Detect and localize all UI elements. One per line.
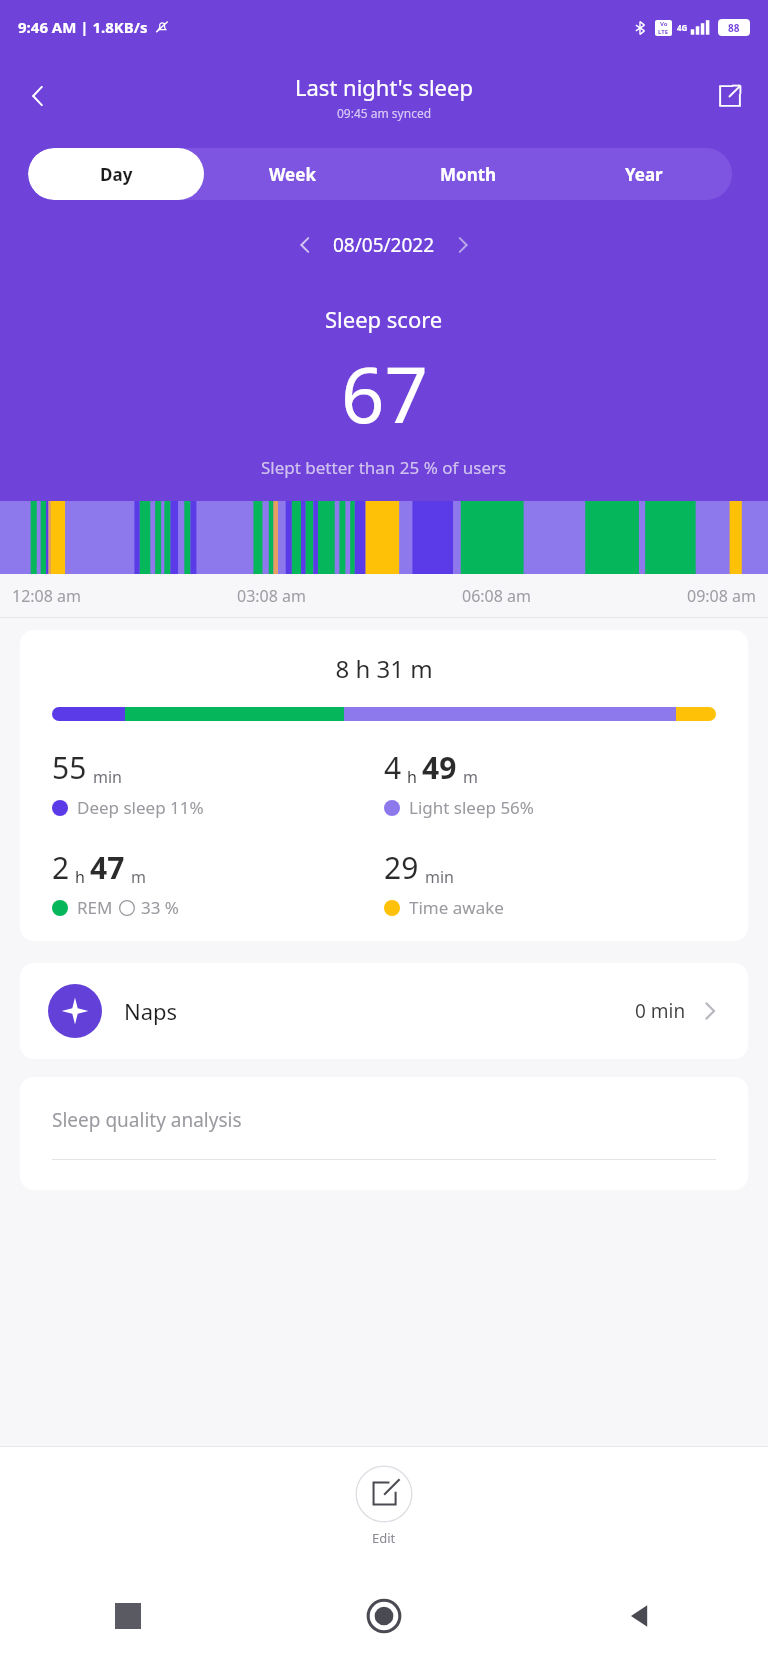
button[interactable]: Back	[512, 1568, 768, 1664]
staticText: min	[425, 866, 454, 888]
staticText: Naps	[124, 996, 178, 1026]
staticText: 67	[341, 342, 428, 446]
staticText: 9:46 AM | 1.8KB/s	[18, 17, 148, 37]
button[interactable]: Week	[204, 148, 380, 200]
staticText: Vo	[660, 20, 668, 28]
staticText: Slept better than 25 % of users	[261, 456, 507, 479]
staticText: 88	[728, 21, 740, 35]
staticText: 4G	[677, 22, 688, 33]
staticText: Sleep score	[325, 304, 443, 334]
staticText: Deep sleep 11%	[77, 796, 204, 819]
staticText: 08/05/2022	[333, 232, 435, 258]
staticText: min	[93, 766, 122, 788]
staticText: Day	[100, 163, 133, 186]
button[interactable]: Day	[28, 148, 204, 200]
staticText: 47	[90, 847, 125, 888]
staticText: LTE	[658, 28, 669, 36]
staticText: 09:45 am synced	[337, 105, 432, 121]
staticText: m	[131, 866, 146, 888]
staticText: 09:08 am	[687, 585, 756, 607]
staticText: 06:08 am	[462, 585, 531, 607]
staticText: 03:08 am	[237, 585, 306, 607]
staticText: Week	[269, 163, 316, 186]
staticText: 29	[384, 847, 419, 888]
button[interactable]: Month	[380, 148, 556, 200]
staticText: 49	[422, 747, 457, 788]
button[interactable]: Home	[256, 1568, 512, 1664]
staticText: Year	[625, 163, 663, 186]
button[interactable]: Edit	[335, 1463, 433, 1549]
staticText: h	[75, 866, 85, 888]
staticText: Light sleep 56%	[409, 796, 534, 819]
button[interactable]: Naps	[20, 963, 748, 1059]
staticText: Month	[440, 163, 497, 186]
staticText: Time awake	[409, 896, 504, 919]
staticText: 33 %	[141, 896, 179, 919]
staticText: Edit	[372, 1529, 396, 1547]
staticText: 12:08 am	[12, 585, 81, 607]
button[interactable]: Next day	[441, 223, 485, 267]
button[interactable]: Year	[556, 148, 732, 200]
staticText: REM	[77, 896, 113, 919]
staticText: 2	[52, 847, 70, 888]
staticText: Sleep quality analysis	[52, 1107, 242, 1133]
button[interactable]: Share	[704, 70, 756, 122]
staticText: 55	[52, 747, 87, 788]
staticText: h	[407, 766, 417, 788]
staticText: Last night's sleep	[295, 72, 473, 102]
button[interactable]: Sleep quality analysis	[20, 1077, 748, 1190]
staticText: 8 h 31 m	[52, 652, 716, 685]
staticText: 4	[384, 747, 402, 788]
button[interactable]: Back	[10, 68, 66, 124]
staticText: 0 min	[635, 998, 686, 1024]
button[interactable]: Recent apps	[0, 1568, 256, 1664]
staticText: m	[463, 766, 478, 788]
button[interactable]: Previous day	[283, 223, 327, 267]
